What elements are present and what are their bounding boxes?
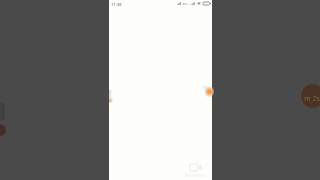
button[interactable]: Open item (201, 82, 212, 100)
button[interactable]: Stop recording (0, 124, 6, 136)
button[interactable]: Recording timer (301, 84, 320, 108)
staticText: 11:38 (111, 2, 122, 8)
staticText: m 2s (304, 94, 320, 104)
staticText: 4G+ (182, 2, 190, 5)
